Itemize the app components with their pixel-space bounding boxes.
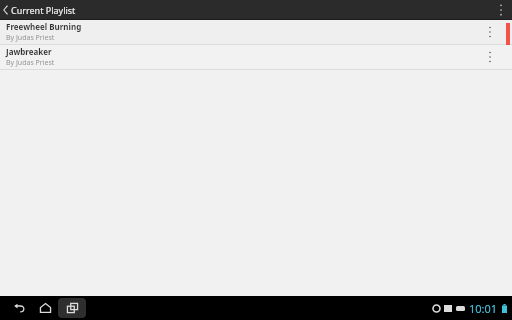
button[interactable]: Freewheel Burning xyxy=(0,20,512,44)
staticText: Freewheel Burning xyxy=(6,21,82,32)
staticText: Jawbreaker xyxy=(6,46,52,57)
button[interactable]: Jawbreaker xyxy=(0,45,512,69)
staticText: 10:01 xyxy=(469,301,498,316)
button[interactable]: Recent apps xyxy=(58,298,86,318)
button[interactable]: Home xyxy=(32,298,58,318)
staticText: Current Playlist xyxy=(11,4,76,16)
button[interactable]: Back xyxy=(6,298,32,318)
staticText: By Judas Priest xyxy=(6,33,55,43)
staticText: By Judas Priest xyxy=(6,58,55,68)
button[interactable]: Track options xyxy=(478,45,502,69)
button[interactable]: More options xyxy=(490,0,512,20)
button[interactable]: Back to Current Playlist xyxy=(0,0,82,20)
button[interactable]: Track options xyxy=(478,20,502,44)
